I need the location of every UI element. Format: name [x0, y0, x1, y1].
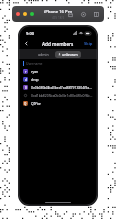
staticText: iPhone 16 Pro — [44, 9, 72, 15]
staticText: 0xd1bb8205ba0b0d3e1c80e4f0c0f6bc4a180… — [31, 93, 93, 98]
staticText: QIYtcr — [31, 101, 93, 106]
staticText: r — [25, 70, 27, 74]
staticText: iOS 18.5 — [52, 16, 65, 20]
button[interactable]: Settings — [79, 10, 87, 18]
staticText: 9:00 — [26, 31, 34, 36]
button[interactable]: Screenshot — [92, 10, 100, 18]
button[interactable]: d — [19, 75, 97, 83]
button[interactable]: Back — [22, 39, 31, 48]
staticText: Skip — [84, 41, 93, 47]
staticText: Username — [26, 61, 43, 66]
button[interactable]: 0 — [19, 83, 97, 91]
staticText: ryan — [31, 69, 93, 74]
button[interactable]: Zoom — [30, 12, 34, 16]
staticText: 0x0b080d4bd3bed7ad887913304f3a0DC646… — [31, 85, 93, 90]
button[interactable]: admin — [35, 51, 52, 58]
staticText: 0 — [25, 86, 27, 90]
staticText: Add members — [42, 41, 74, 47]
button[interactable]: Home — [66, 10, 74, 18]
button[interactable]: Skip — [83, 40, 94, 48]
button[interactable]: Close — [16, 12, 20, 16]
staticText: drop — [31, 77, 93, 82]
button[interactable]: Q — [19, 99, 97, 107]
staticText: Q — [24, 102, 27, 106]
staticText: d — [25, 78, 27, 82]
button[interactable]: Minimise — [23, 12, 27, 16]
button[interactable]: unknown — [55, 51, 81, 58]
button[interactable]: 0xd1bb8205ba0b0d3e1c80e4f0c0f6bc4a180… — [19, 91, 97, 99]
button[interactable]: r — [19, 67, 97, 75]
staticText: unknown — [62, 52, 78, 57]
button[interactable]: Username — [19, 59, 97, 67]
staticText: admin — [38, 52, 49, 57]
